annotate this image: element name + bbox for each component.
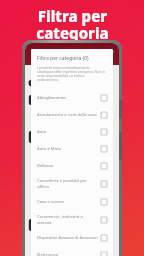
button[interactable]: Dispositivi Amazon & Accessori	[31, 229, 113, 246]
staticText: Abbigliamento	[37, 95, 66, 101]
button[interactable]: Arredamento e cura della casa	[31, 106, 113, 123]
button[interactable]: Abbigliamento	[31, 89, 113, 106]
staticText: Cancelleria e prodotti per	[37, 178, 87, 184]
staticText: Auto e Moto	[37, 146, 62, 152]
other: Select Abbigliamento	[101, 95, 107, 101]
staticText: Casa e cucina	[37, 199, 64, 205]
staticText: I prodotti sono automaticamente cataloga…	[37, 65, 106, 82]
staticText: scienza	[37, 220, 52, 226]
other: Select Elettronica	[101, 252, 107, 256]
other: Select Dispositivi Amazon & Accessori	[101, 235, 107, 241]
button[interactable]: Cancelleria e prodotti per	[31, 174, 113, 193]
staticText: Auto	[37, 129, 47, 135]
other: Select Cancelleria e prodotti per	[101, 181, 107, 187]
button[interactable]: Back	[29, 50, 37, 58]
button[interactable]: Filtra per categoria	[10, 6, 134, 44]
other: Select Auto	[101, 129, 107, 135]
other: Select Auto e Moto	[101, 146, 107, 152]
button[interactable]: Elettronica	[31, 246, 113, 256]
other: Select Casa e cucina	[101, 199, 107, 205]
button[interactable]: Auto e Moto	[31, 140, 113, 157]
staticText: Commercio, industria e	[37, 214, 83, 220]
other: Select Arredamento e cura della casa	[101, 112, 107, 118]
staticText: ufficio	[37, 184, 50, 190]
button[interactable]: Casa e cucina	[31, 193, 113, 210]
other: Select Commercio, industria e	[101, 217, 107, 223]
staticText: Arredamento e cura della casa	[37, 112, 97, 118]
staticText: Filtra per categoria	[36, 6, 109, 44]
staticText: Dispositivi Amazon & Accessori	[37, 235, 98, 241]
staticText: Filtra per categoria (0)	[37, 55, 89, 62]
button[interactable]: Filter	[107, 50, 115, 58]
button[interactable]: Auto	[31, 123, 113, 140]
button[interactable]: Commercio, industria e	[31, 210, 113, 229]
button[interactable]: Bellezza	[31, 157, 113, 174]
staticText: Bellezza	[37, 163, 53, 169]
staticText: Elettronica	[37, 252, 59, 256]
other: Select Bellezza	[101, 163, 107, 169]
